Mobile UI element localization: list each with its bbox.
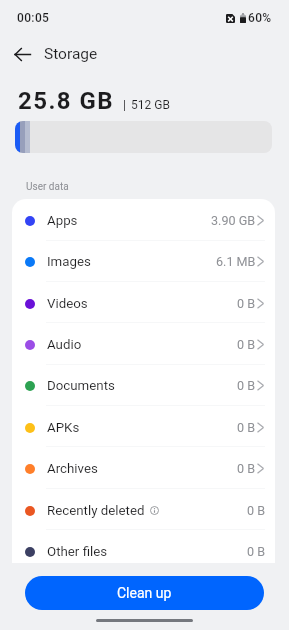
button[interactable]: Documents: [12, 365, 275, 406]
button[interactable]: Archives: [12, 448, 275, 489]
staticText: Apps: [47, 213, 78, 229]
staticText: 0 B: [237, 461, 256, 476]
staticText: 0 B: [247, 503, 266, 518]
staticText: Videos: [47, 296, 88, 312]
staticText: Recently deleted: [47, 503, 145, 519]
staticText: User data: [26, 181, 69, 193]
button[interactable]: Images: [12, 241, 275, 282]
staticText: 60%: [248, 11, 272, 25]
staticText: Other files: [47, 544, 108, 560]
staticText: Clean up: [117, 585, 172, 601]
staticText: 00:05: [17, 11, 50, 25]
staticText: Audio: [47, 337, 82, 353]
staticText: Documents: [47, 378, 115, 394]
staticText: 0 B: [237, 420, 256, 435]
staticText: 512 GB: [131, 98, 170, 112]
button[interactable]: Back: [7, 39, 37, 69]
staticText: Archives: [47, 461, 98, 477]
staticText: Storage: [44, 45, 98, 63]
button[interactable]: Clean up: [25, 576, 264, 610]
staticText: 25.8 GB: [18, 87, 115, 115]
button[interactable]: Other files: [12, 531, 275, 563]
staticText: Images: [47, 254, 91, 270]
staticText: 6.1 MB: [216, 254, 256, 269]
staticText: 0 B: [237, 296, 256, 311]
button[interactable]: Recently deleted: [12, 490, 275, 531]
staticText: 0 B: [247, 544, 266, 559]
staticText: APKs: [47, 420, 80, 436]
button[interactable]: Audio: [12, 324, 275, 365]
staticText: 0 B: [237, 337, 256, 352]
staticText: |: [123, 98, 126, 112]
button[interactable]: Apps: [12, 200, 275, 241]
staticText: 3.90 GB: [211, 213, 256, 228]
staticText: 0 B: [237, 378, 256, 393]
button[interactable]: Videos: [12, 283, 275, 324]
button[interactable]: APKs: [12, 407, 275, 448]
